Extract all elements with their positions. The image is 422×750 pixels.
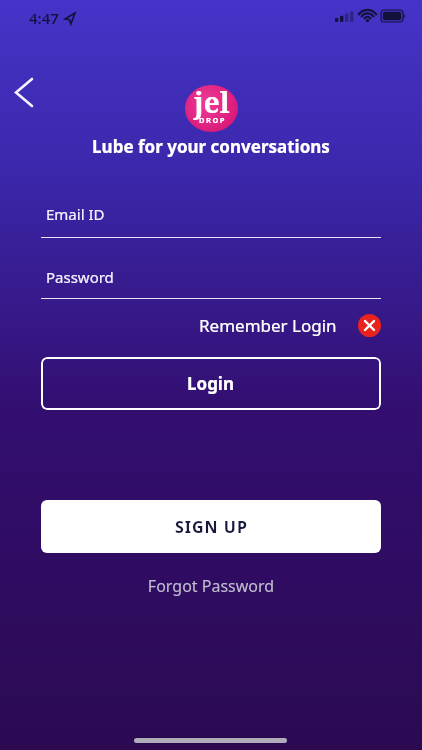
staticText: 4:47 (29, 8, 59, 28)
button[interactable]: Login (41, 357, 381, 410)
button[interactable]: Forgot Password (0, 575, 422, 597)
staticText: Remember Login (199, 314, 337, 337)
staticText: SIGN UP (175, 516, 248, 538)
button[interactable] (4, 70, 44, 114)
staticText: DROP (199, 115, 226, 124)
staticText: Login (187, 372, 235, 395)
staticText: Password (46, 267, 114, 287)
button[interactable]: SIGN UP (41, 500, 381, 553)
staticText: Email ID (46, 204, 105, 224)
staticText: jel (194, 83, 230, 121)
staticText: Lube for your conversations (0, 135, 422, 158)
button[interactable]: Remember Login (0, 314, 381, 337)
